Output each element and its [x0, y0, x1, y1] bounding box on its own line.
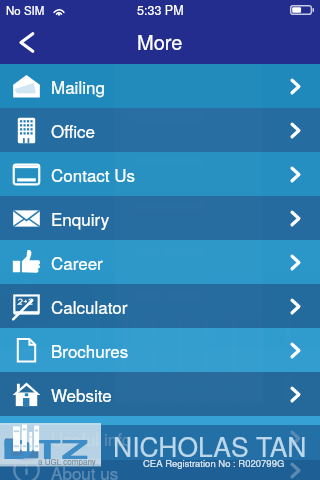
button[interactable]: Office [0, 108, 320, 152]
staticText: Brochures [51, 338, 129, 362]
button[interactable]: Back [0, 20, 52, 64]
staticText: No SIM [6, 2, 45, 18]
staticText: Office [51, 118, 96, 142]
button[interactable]: Mailing [0, 64, 320, 108]
staticText: DTZ [1, 430, 90, 467]
button[interactable]: Useful info [0, 416, 320, 460]
staticText: 5:33 PM [137, 1, 184, 19]
button[interactable]: Calculator [0, 284, 320, 328]
button[interactable]: Career [0, 240, 320, 284]
button[interactable]: Website [0, 372, 320, 416]
staticText: CEA Registration No : R020799G [143, 456, 285, 470]
staticText: Useful info [51, 426, 132, 450]
staticText: Mailing [51, 74, 105, 98]
staticText: More [137, 27, 183, 56]
staticText: Enquiry [51, 206, 110, 230]
staticText: Contact Us [51, 162, 136, 186]
button[interactable]: Enquiry [0, 196, 320, 240]
button[interactable]: Contact Us [0, 152, 320, 196]
staticText: a UGL company [38, 456, 96, 467]
staticText: Website [51, 382, 112, 406]
staticText: About us [51, 460, 119, 480]
staticText: NICHOLAS TAN [113, 427, 307, 465]
staticText: Calculator [51, 294, 128, 318]
button[interactable]: Brochures [0, 328, 320, 372]
staticText: Career [51, 250, 103, 274]
button[interactable]: About us [0, 460, 320, 480]
